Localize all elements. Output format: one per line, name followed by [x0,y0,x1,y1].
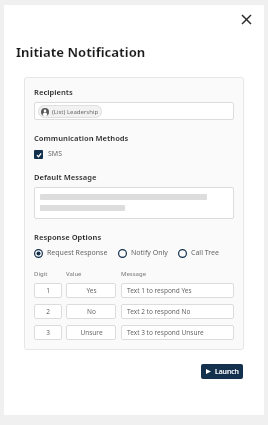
staticText: Unsure [80,328,103,337]
button[interactable]: No [66,304,116,319]
button[interactable]: Unsure [66,325,116,340]
button[interactable]: Call Tree [178,248,219,258]
staticText: Text 3 to respond Unsure [127,328,204,337]
button[interactable]: Text 2 to respond No [121,304,234,319]
staticText: 3 [46,328,50,337]
button[interactable]: Launch [201,364,243,379]
staticText: Response Options [34,232,102,242]
button[interactable]: (List) Leadership [34,102,234,120]
button[interactable] [34,187,234,219]
staticText: Default Message [34,172,97,182]
staticText: No [87,307,96,316]
staticText: Text 2 to respond No [127,307,191,316]
staticText: Communication Methods [34,133,129,143]
staticText: Value [66,270,116,278]
button[interactable]: Request Response [34,248,108,258]
button[interactable]: Text 3 to respond Unsure [121,325,234,340]
staticText: 1 [46,286,50,295]
staticText: Call Tree [191,248,219,258]
staticText: Initiate Notification [16,43,146,61]
staticText: (List) Leadership [52,108,99,116]
staticText: SMS [48,149,63,159]
button[interactable]: Close [236,9,256,29]
button[interactable]: 1 [34,283,62,298]
button[interactable]: Text 1 to respond Yes [121,283,234,298]
staticText: Notify Only [131,248,168,258]
button[interactable]: 3 [34,325,62,340]
staticText: 2 [46,307,50,316]
staticText: Launch [215,367,239,377]
button[interactable]: Yes [66,283,116,298]
button[interactable]: 2 [34,304,62,319]
staticText: Digit [34,270,62,278]
button[interactable]: SMS [34,149,63,159]
staticText: Request Response [47,248,108,258]
button[interactable]: Notify Only [118,248,168,258]
staticText: Yes [86,286,97,295]
staticText: Text 1 to respond Yes [127,286,192,295]
staticText: Recipients [34,87,73,97]
staticText: Message [121,270,147,278]
